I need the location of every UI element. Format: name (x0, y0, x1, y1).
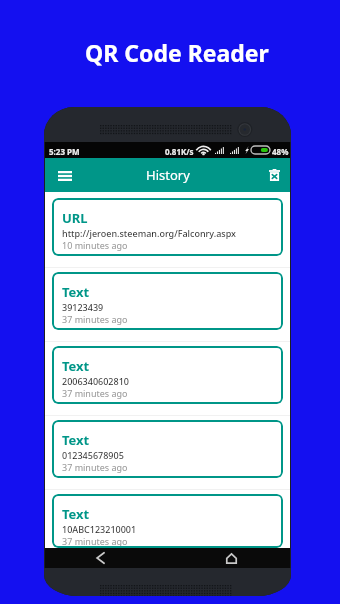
staticText: Text (62, 505, 90, 523)
staticText: Text (62, 431, 90, 449)
staticText: 37 minutes ago (62, 387, 128, 399)
staticText: URL (62, 209, 88, 227)
staticText: History (146, 166, 190, 184)
button[interactable]: Home (209, 548, 253, 568)
button[interactable]: Delete history (256, 158, 290, 192)
staticText: 10ABC123210001 (62, 523, 137, 535)
staticText: http://jeroen.steeman.org/Falconry.aspx (62, 227, 236, 239)
staticText: 48% (272, 146, 289, 157)
staticText: 5:23 PM (49, 146, 80, 157)
staticText: 37 minutes ago (62, 535, 128, 547)
staticText: 2006340602810 (62, 375, 129, 387)
staticText: 012345678905 (62, 449, 124, 461)
staticText: Text (62, 357, 90, 375)
staticText: 0.81K/s (165, 146, 194, 157)
button[interactable]: Text (52, 494, 283, 548)
button[interactable]: Text (52, 420, 283, 478)
staticText: QR Code Reader (85, 37, 269, 68)
staticText: 37 minutes ago (62, 461, 128, 473)
button[interactable]: Open navigation menu (48, 158, 82, 192)
staticText: 10 minutes ago (62, 239, 128, 251)
staticText: Text (62, 283, 90, 301)
button[interactable]: Text (52, 272, 283, 330)
button[interactable]: Text (52, 346, 283, 404)
button[interactable]: Back (78, 548, 122, 568)
button[interactable]: URL (52, 198, 283, 256)
staticText: 37 minutes ago (62, 313, 128, 325)
staticText: 39123439 (62, 301, 104, 313)
